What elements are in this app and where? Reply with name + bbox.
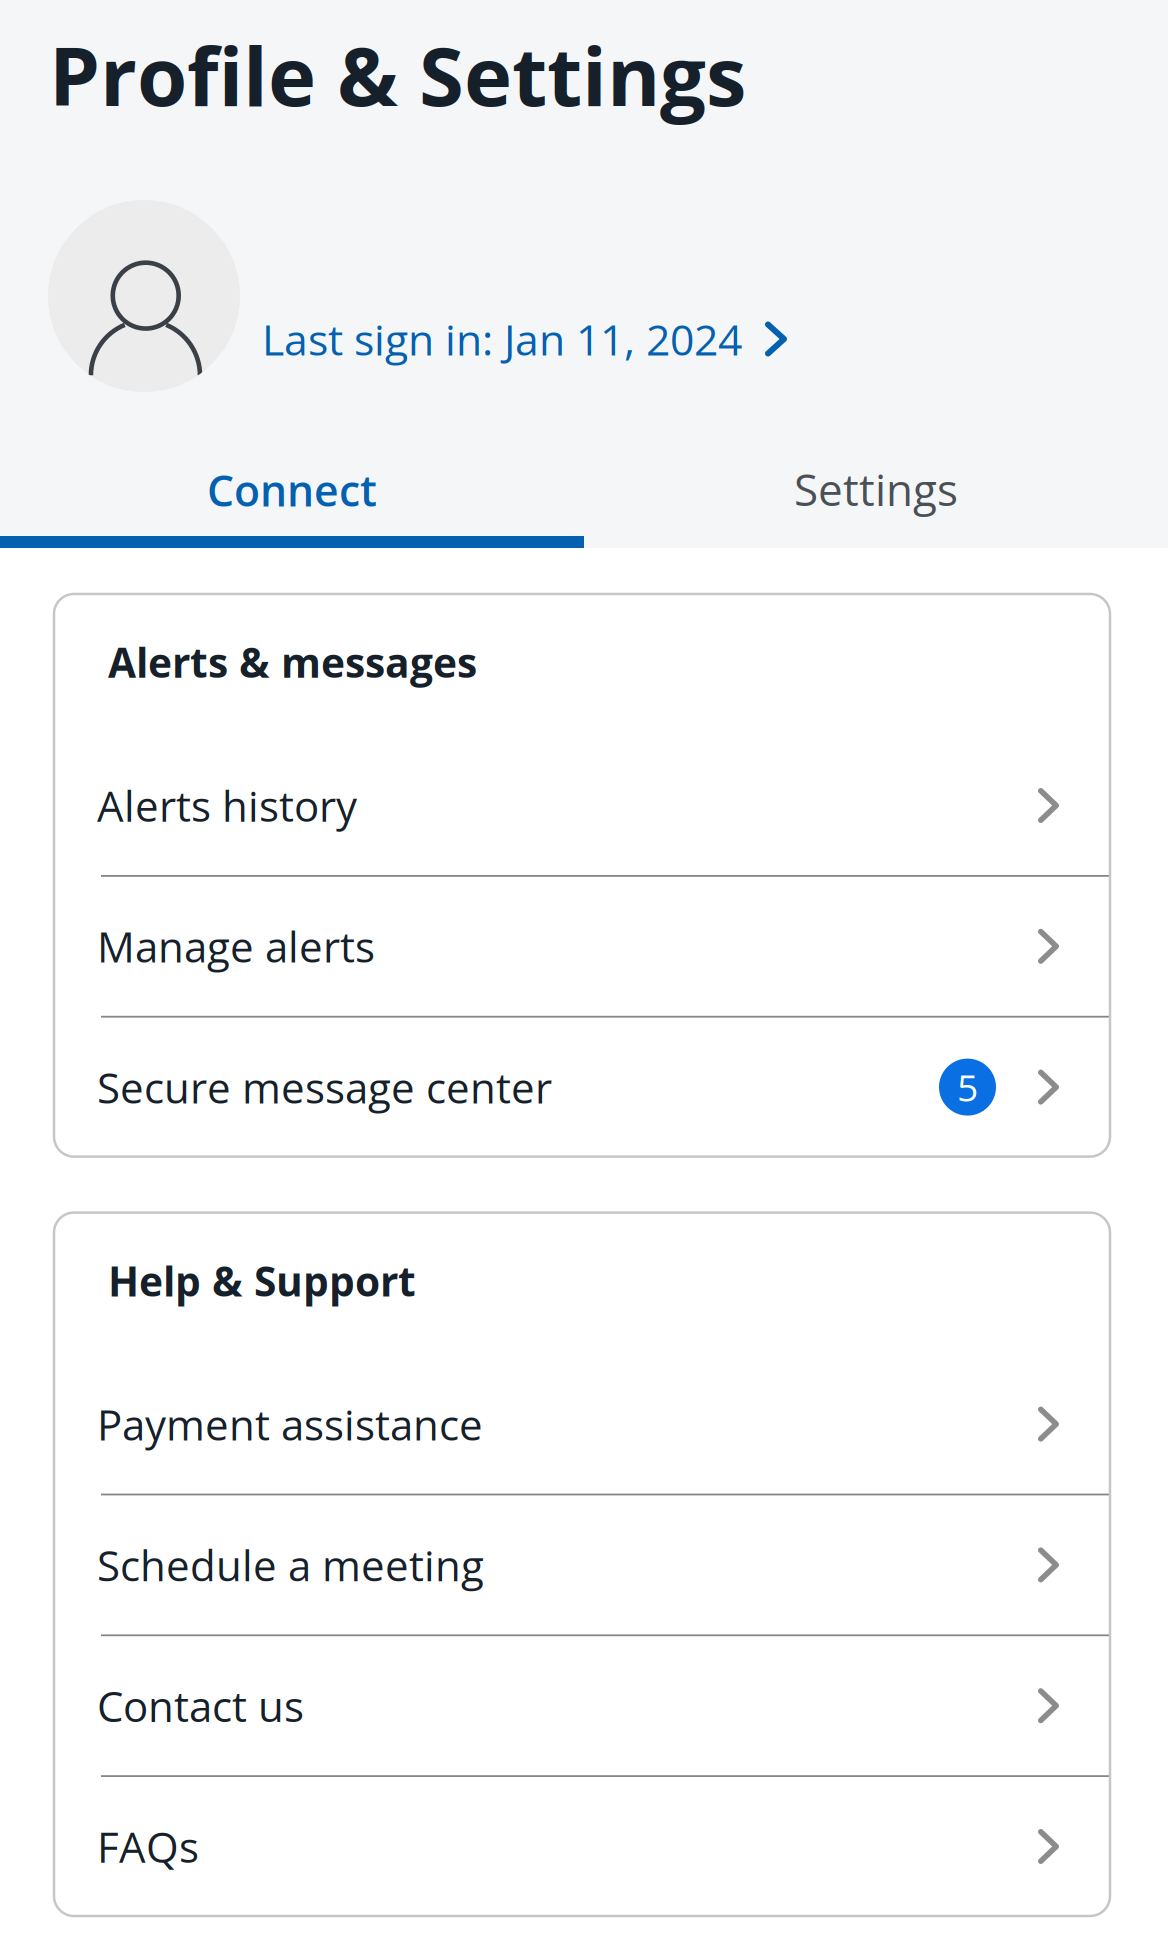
staticText: 5	[957, 1062, 978, 1112]
staticText: Last sign in: Jan 11, 2024	[262, 310, 742, 368]
button[interactable]: Secure message center	[54, 1018, 1110, 1157]
button[interactable]: Alerts history	[54, 736, 1110, 875]
button[interactable]: Contact us	[54, 1636, 1110, 1775]
staticText: Alerts & messages	[108, 634, 477, 690]
button[interactable]: FAQs	[54, 1777, 1110, 1916]
staticText: Secure message center	[97, 1058, 552, 1116]
staticText: Help & Support	[108, 1253, 416, 1308]
staticText: Settings	[794, 459, 958, 519]
staticText: FAQs	[97, 1818, 199, 1875]
staticText: Connect	[207, 461, 377, 519]
button[interactable]: Settings	[584, 450, 1168, 536]
staticText: Payment assistance	[97, 1395, 483, 1453]
button[interactable]: Manage alerts	[54, 877, 1110, 1016]
button[interactable]: Last sign in: Jan 11, 2024	[240, 248, 787, 344]
staticText: Contact us	[97, 1677, 304, 1734]
staticText: Schedule a meeting	[97, 1536, 484, 1593]
button[interactable]: Schedule a meeting	[54, 1495, 1110, 1634]
staticText: Alerts history	[97, 777, 357, 834]
staticText: Manage alerts	[97, 918, 375, 975]
button[interactable]: Connect	[0, 450, 584, 536]
staticText: Profile & Settings	[49, 19, 746, 130]
button[interactable]: Payment assistance	[54, 1355, 1110, 1494]
